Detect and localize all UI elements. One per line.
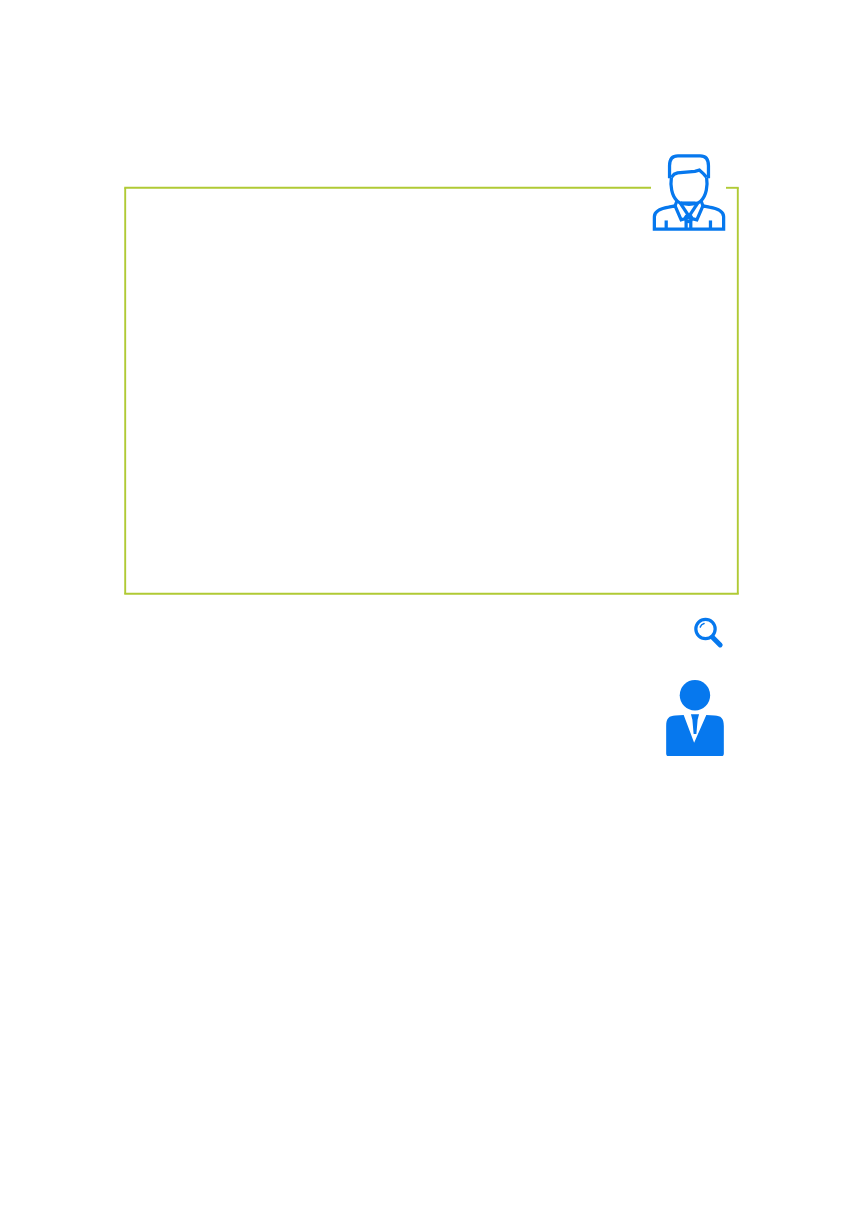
button[interactable]: Search [695,617,723,647]
button[interactable]: Account [666,680,724,756]
button[interactable]: Profile [652,154,726,232]
